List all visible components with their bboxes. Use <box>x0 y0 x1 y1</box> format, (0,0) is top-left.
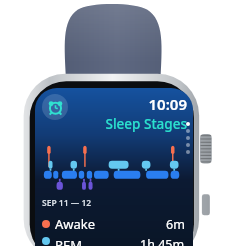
button[interactable]: Awake <box>42 215 185 233</box>
staticText: 6m <box>166 216 185 233</box>
button[interactable]: Alarm <box>42 94 68 120</box>
staticText: SEP 11 — 12 <box>42 197 92 209</box>
staticText: Sleep Stages <box>105 115 187 133</box>
staticText: Awake <box>55 215 96 233</box>
staticText: 10:09 <box>148 94 187 114</box>
button[interactable]: REM <box>42 236 185 246</box>
staticText: 1h 45m <box>140 236 185 246</box>
button[interactable]: Sleep stages chart <box>41 145 185 191</box>
staticText: REM <box>55 236 83 246</box>
